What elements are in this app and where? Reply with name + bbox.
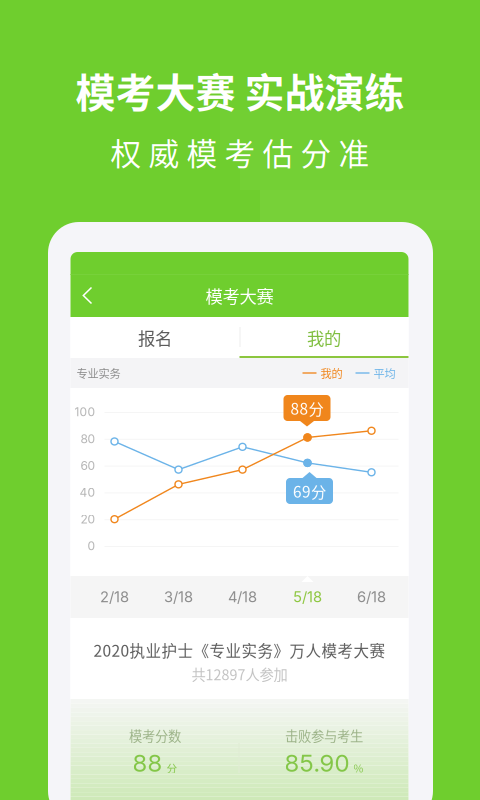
staticText: 2020执业护士《专业实务》万人模考大赛 <box>93 639 385 661</box>
staticText: % <box>353 760 363 775</box>
staticText: 88 <box>132 748 162 777</box>
staticText: 60 <box>80 458 95 473</box>
staticText: 6/18 <box>357 588 386 606</box>
staticText: 69分 <box>293 480 326 502</box>
button[interactable]: 2/18 <box>82 576 146 618</box>
staticText: 20 <box>80 512 95 526</box>
staticText: 平均 <box>373 365 395 381</box>
staticText: 3/18 <box>164 588 193 606</box>
staticText: 4/18 <box>228 588 257 606</box>
staticText: 共12897人参加 <box>191 664 287 684</box>
staticText: 80 <box>80 431 95 446</box>
staticText: 我的 <box>320 365 342 381</box>
staticText: 专业实务 <box>76 365 120 381</box>
button[interactable]: 6/18 <box>339 576 403 618</box>
staticText: 40 <box>79 485 95 500</box>
staticText: 权 威 模 考 估 分 准 <box>110 130 369 174</box>
staticText: 分 <box>166 760 177 775</box>
staticText: 我的 <box>307 325 341 350</box>
staticText: 报名 <box>138 325 172 350</box>
staticText: 模考大赛 <box>205 283 273 308</box>
button[interactable]: 报名 <box>70 317 239 358</box>
staticText: 88分 <box>290 397 323 419</box>
staticText: 模考分数 <box>129 726 181 745</box>
staticText: 5/18 <box>293 588 322 606</box>
staticText: 100 <box>74 405 95 419</box>
staticText: 2/18 <box>100 588 129 606</box>
button[interactable]: 3/18 <box>146 576 210 618</box>
staticText: 模考大赛 实战演练 <box>75 61 404 119</box>
staticText: 0 <box>87 539 95 553</box>
staticText: 85.90 <box>284 748 349 777</box>
button[interactable]: Back <box>70 274 104 317</box>
button[interactable]: 5/18 <box>275 576 339 618</box>
button[interactable]: 我的 <box>239 317 408 358</box>
button[interactable]: 4/18 <box>210 576 274 618</box>
staticText: 击败参与考生 <box>285 726 363 745</box>
